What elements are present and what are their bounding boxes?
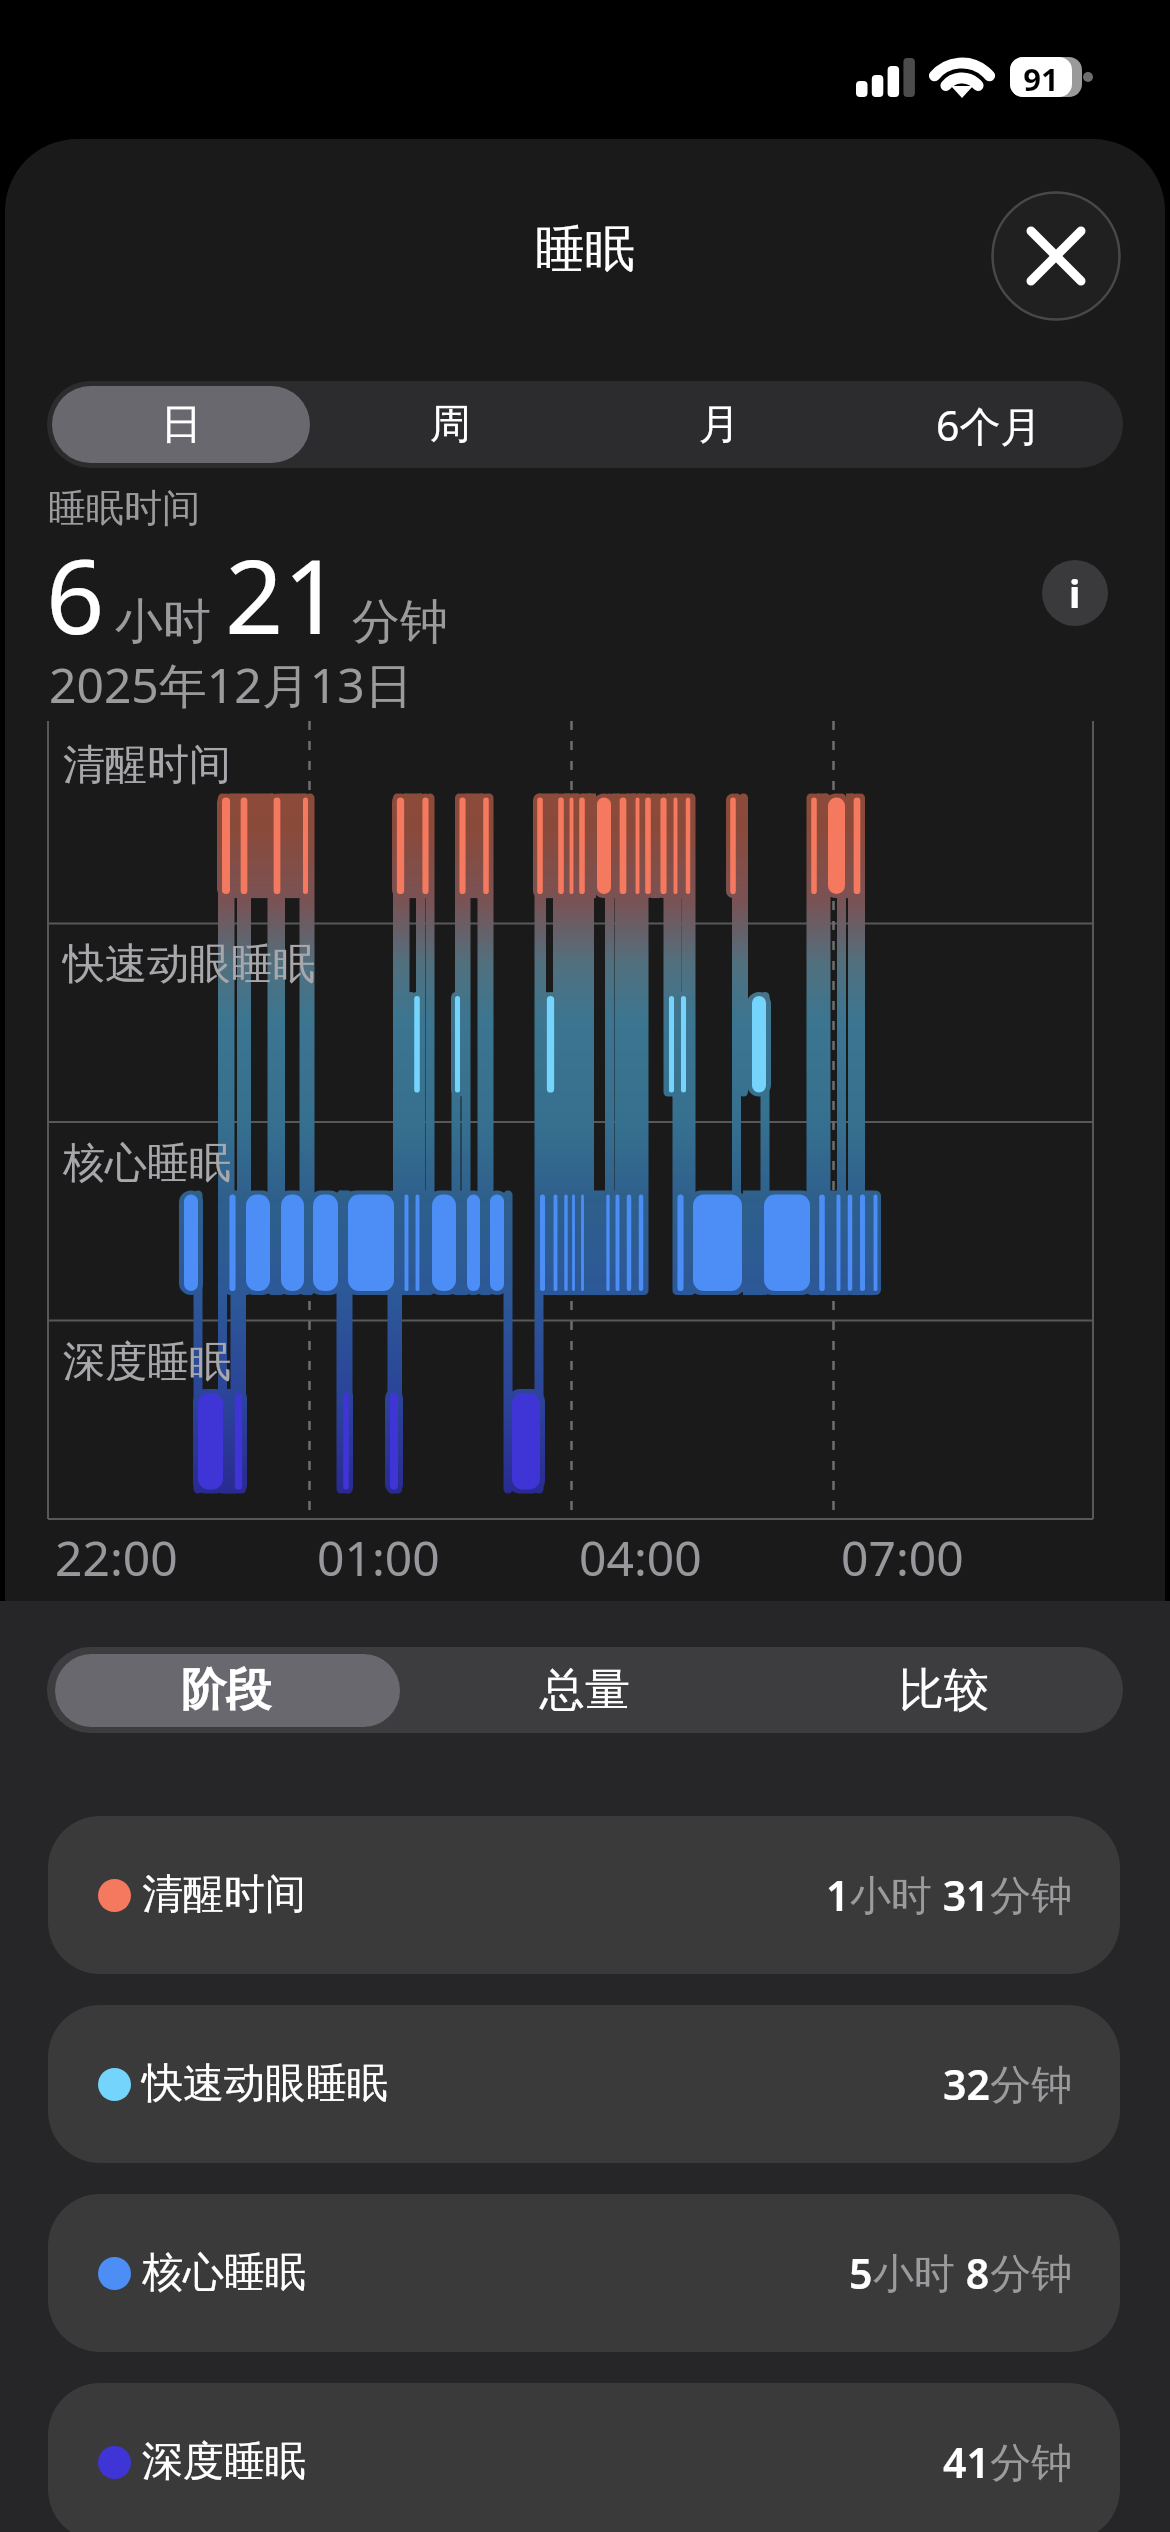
staticText: 分钟 (352, 592, 448, 652)
staticText: 分钟 (990, 2249, 1072, 2301)
staticText: 分钟 (990, 2438, 1072, 2490)
staticText: 核心睡眠 (142, 2247, 306, 2299)
staticText: i (1069, 567, 1081, 619)
staticText: 阶段 (181, 1662, 271, 1719)
staticText: 快速动眼睡眠 (63, 938, 315, 991)
button[interactable]: Info (1042, 560, 1108, 626)
staticText: 深度睡眠 (63, 1336, 231, 1389)
staticText: 月 (699, 399, 740, 451)
button[interactable]: 月 (585, 381, 854, 468)
staticText: 日 (161, 399, 202, 451)
button[interactable]: 清醒时间 (48, 1816, 1120, 1974)
staticText: 清醒时间 (142, 1869, 306, 1921)
button[interactable]: 6个月 (854, 381, 1123, 468)
staticText: 2025年12月13日 (49, 652, 413, 718)
staticText: 分钟 (990, 2060, 1072, 2112)
button[interactable]: 日 (47, 381, 316, 468)
staticText: 91 (1013, 58, 1069, 100)
staticText: 5 (849, 2245, 873, 2301)
staticText: 22:00 (55, 1525, 178, 1590)
staticText: 41 (943, 2434, 990, 2490)
button[interactable]: 快速动眼睡眠 (48, 2005, 1120, 2163)
button[interactable]: 深度睡眠 (48, 2383, 1120, 2532)
button[interactable]: 周 (316, 381, 585, 468)
staticText: 睡眠 (535, 218, 635, 281)
staticText: 6个月 (936, 397, 1042, 453)
staticText: 小时 (115, 592, 211, 652)
staticText: 核心睡眠 (63, 1137, 231, 1190)
staticText: 总量 (540, 1662, 630, 1719)
staticText: 04:00 (579, 1525, 702, 1590)
staticText: 周 (430, 399, 471, 451)
staticText: 21 (225, 525, 342, 664)
staticText: 深度睡眠 (142, 2436, 306, 2488)
staticText: 小时 (873, 2249, 955, 2301)
staticText: 快速动眼睡眠 (142, 2058, 388, 2110)
staticText: 分钟 (990, 1871, 1072, 1923)
button[interactable]: 核心睡眠 (48, 2194, 1120, 2352)
staticText: 8 (955, 2245, 990, 2301)
button[interactable]: 阶段 (47, 1647, 405, 1733)
staticText: 清醒时间 (63, 739, 231, 792)
staticText: 1 (826, 1867, 850, 1923)
staticText: 31 (932, 1867, 990, 1923)
staticText: 睡眠时间 (48, 484, 200, 532)
staticText: 6 (46, 525, 105, 664)
button[interactable]: 比较 (764, 1647, 1123, 1733)
staticText: 比较 (899, 1662, 989, 1719)
staticText: 32 (943, 2056, 990, 2112)
staticText: 01:00 (317, 1525, 440, 1590)
button[interactable]: 总量 (405, 1647, 764, 1733)
staticText: 小时 (850, 1871, 932, 1923)
button[interactable]: Close (991, 191, 1121, 321)
staticText: 07:00 (841, 1525, 964, 1590)
